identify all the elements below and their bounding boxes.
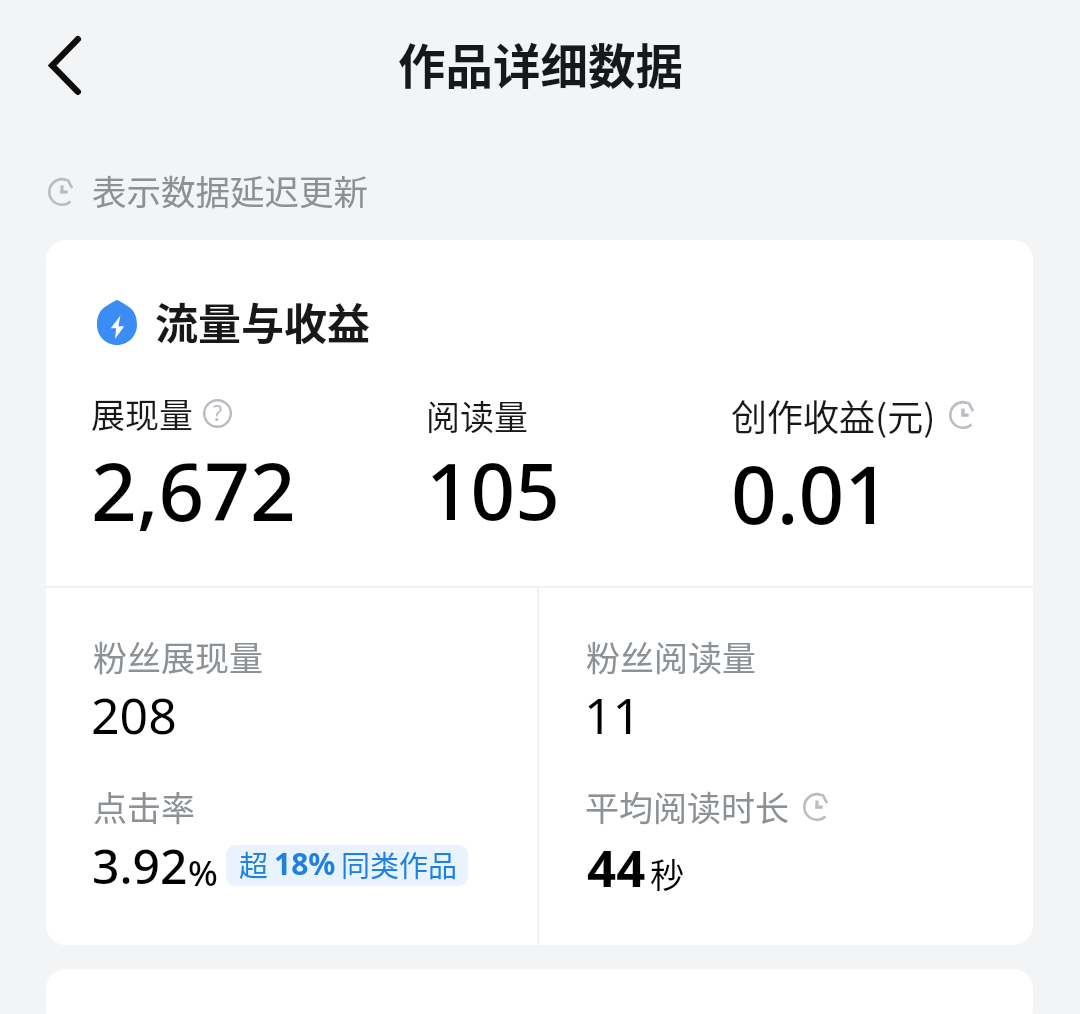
staticText: 0.01 (731, 438, 891, 547)
staticText: 表示数据延迟更新 (92, 165, 368, 215)
staticText: 阅读量 (426, 391, 528, 440)
staticText: 流量与收益 (155, 290, 370, 352)
staticText: ? (213, 399, 223, 428)
button[interactable]: 表示数据延迟更新 (44, 165, 368, 215)
staticText: 展现量 (91, 389, 193, 438)
staticText: 11 (584, 681, 642, 749)
staticText: 平均阅读时长 (585, 782, 789, 831)
staticText: 44 (587, 832, 646, 901)
staticText: % (188, 849, 218, 897)
staticText: 粉丝阅读量 (586, 632, 756, 681)
staticText: 同类作品 (341, 845, 458, 884)
staticText: 18% (274, 845, 336, 884)
staticText: 创作收益(元) (731, 389, 936, 441)
staticText: 作品详细数据 (398, 29, 683, 98)
staticText: 208 (91, 681, 177, 749)
staticText: 秒 (650, 849, 684, 898)
staticText: 点击率 (93, 782, 195, 831)
staticText: 2,672 (91, 435, 296, 544)
button[interactable]: 返回 (22, 21, 108, 109)
staticText: 粉丝展现量 (93, 632, 263, 681)
staticText: 3.92 (92, 833, 188, 898)
staticText: 105 (426, 437, 560, 543)
staticText: 超 (239, 845, 269, 884)
